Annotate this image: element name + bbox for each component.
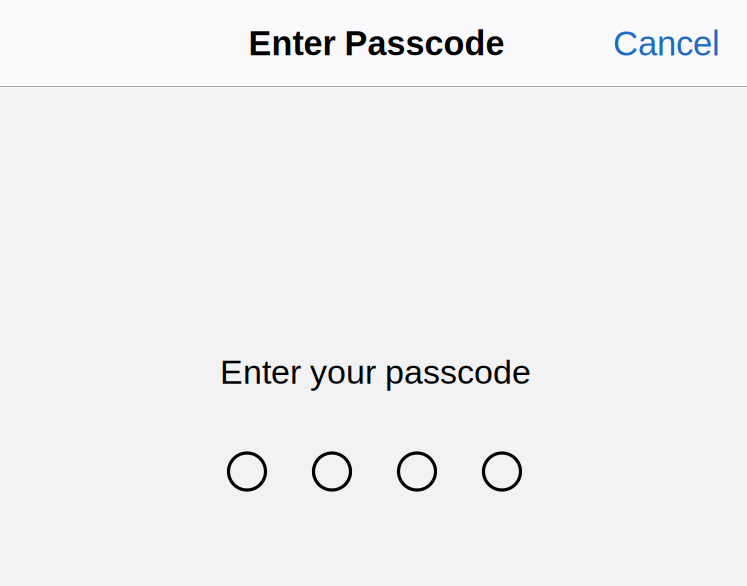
- staticText: Enter your passcode: [220, 353, 531, 391]
- staticText: Enter Passcode: [248, 24, 504, 62]
- staticText: Cancel: [613, 24, 720, 63]
- button[interactable]: Cancel: [598, 12, 735, 75]
